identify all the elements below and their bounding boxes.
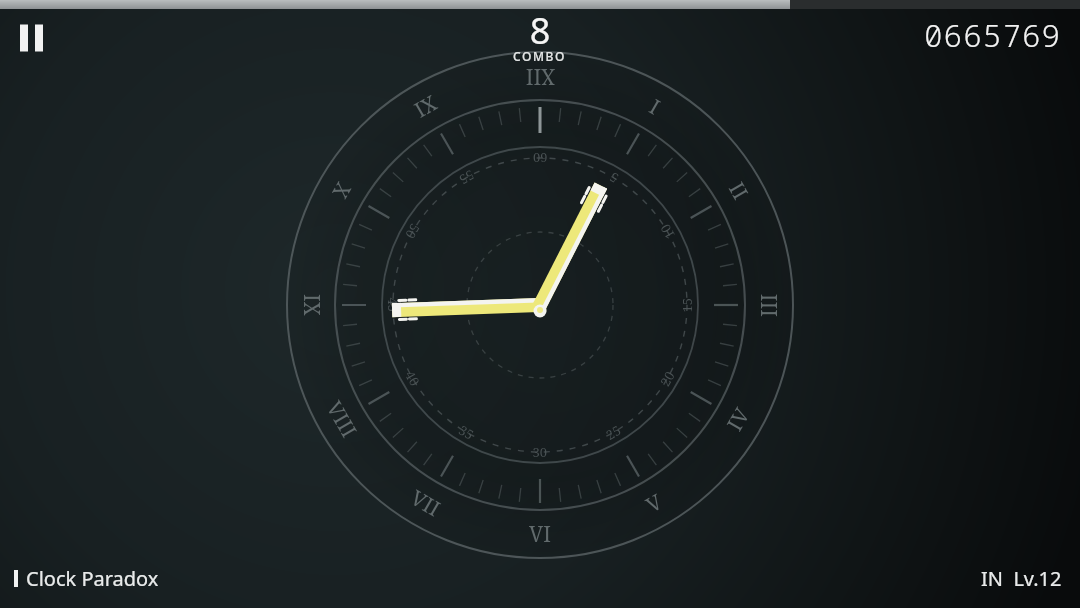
button[interactable] xyxy=(10,566,210,600)
button[interactable] xyxy=(950,566,1070,600)
button[interactable]: Pause xyxy=(8,14,56,62)
